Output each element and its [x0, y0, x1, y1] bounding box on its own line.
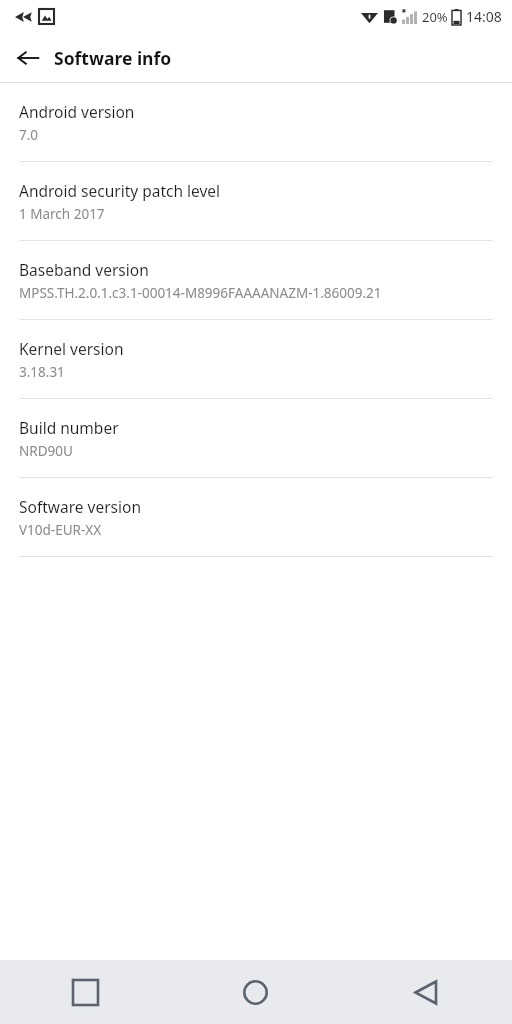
staticText: NRD90U	[19, 442, 73, 460]
button[interactable]: Back	[10, 40, 46, 76]
button[interactable]: Kernel version	[0, 320, 512, 399]
button[interactable]: Back	[341, 960, 512, 1024]
button[interactable]: Android version	[0, 83, 512, 162]
staticText: Android security patch level	[19, 180, 221, 201]
staticText: Software info	[54, 46, 172, 70]
staticText: 14:08	[466, 7, 502, 26]
staticText: Build number	[19, 417, 119, 438]
button[interactable]: Baseband version	[0, 241, 512, 320]
staticText: 1 March 2017	[19, 205, 105, 223]
button[interactable]: Software version	[0, 478, 512, 557]
staticText: 3.18.31	[19, 363, 65, 381]
button[interactable]: Android security patch level	[0, 162, 512, 241]
staticText: Software version	[19, 496, 141, 517]
button[interactable]: Recent apps	[0, 960, 170, 1024]
staticText: Kernel version	[19, 338, 124, 359]
button[interactable]: Home	[170, 960, 341, 1024]
staticText: V10d-EUR-XX	[19, 521, 102, 539]
staticText: 20%	[422, 8, 448, 26]
staticText: Android version	[19, 101, 135, 122]
staticText: 7.0	[19, 126, 39, 144]
button[interactable]: Build number	[0, 399, 512, 478]
staticText: MPSS.TH.2.0.1.c3.1-00014-M8996FAAAANAZM-…	[19, 284, 382, 302]
staticText: Baseband version	[19, 259, 149, 280]
